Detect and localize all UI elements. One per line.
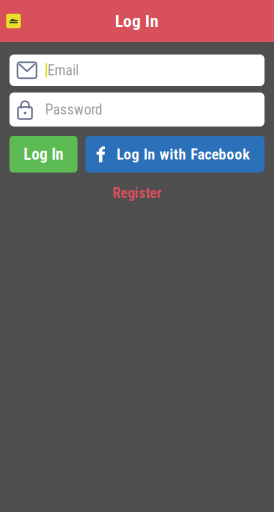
- button[interactable]: Menu: [2, 10, 24, 32]
- staticText: Email: [47, 62, 78, 79]
- button[interactable]: Log In: [9, 136, 77, 172]
- staticText: Register: [112, 184, 161, 202]
- button[interactable]: Log In with Facebook: [85, 136, 264, 172]
- staticText: Log In: [23, 145, 63, 164]
- staticText: Password: [45, 101, 102, 118]
- staticText: Log In with Facebook: [116, 145, 249, 163]
- staticText: Log In: [115, 11, 159, 31]
- button[interactable]: Register: [102, 181, 171, 205]
